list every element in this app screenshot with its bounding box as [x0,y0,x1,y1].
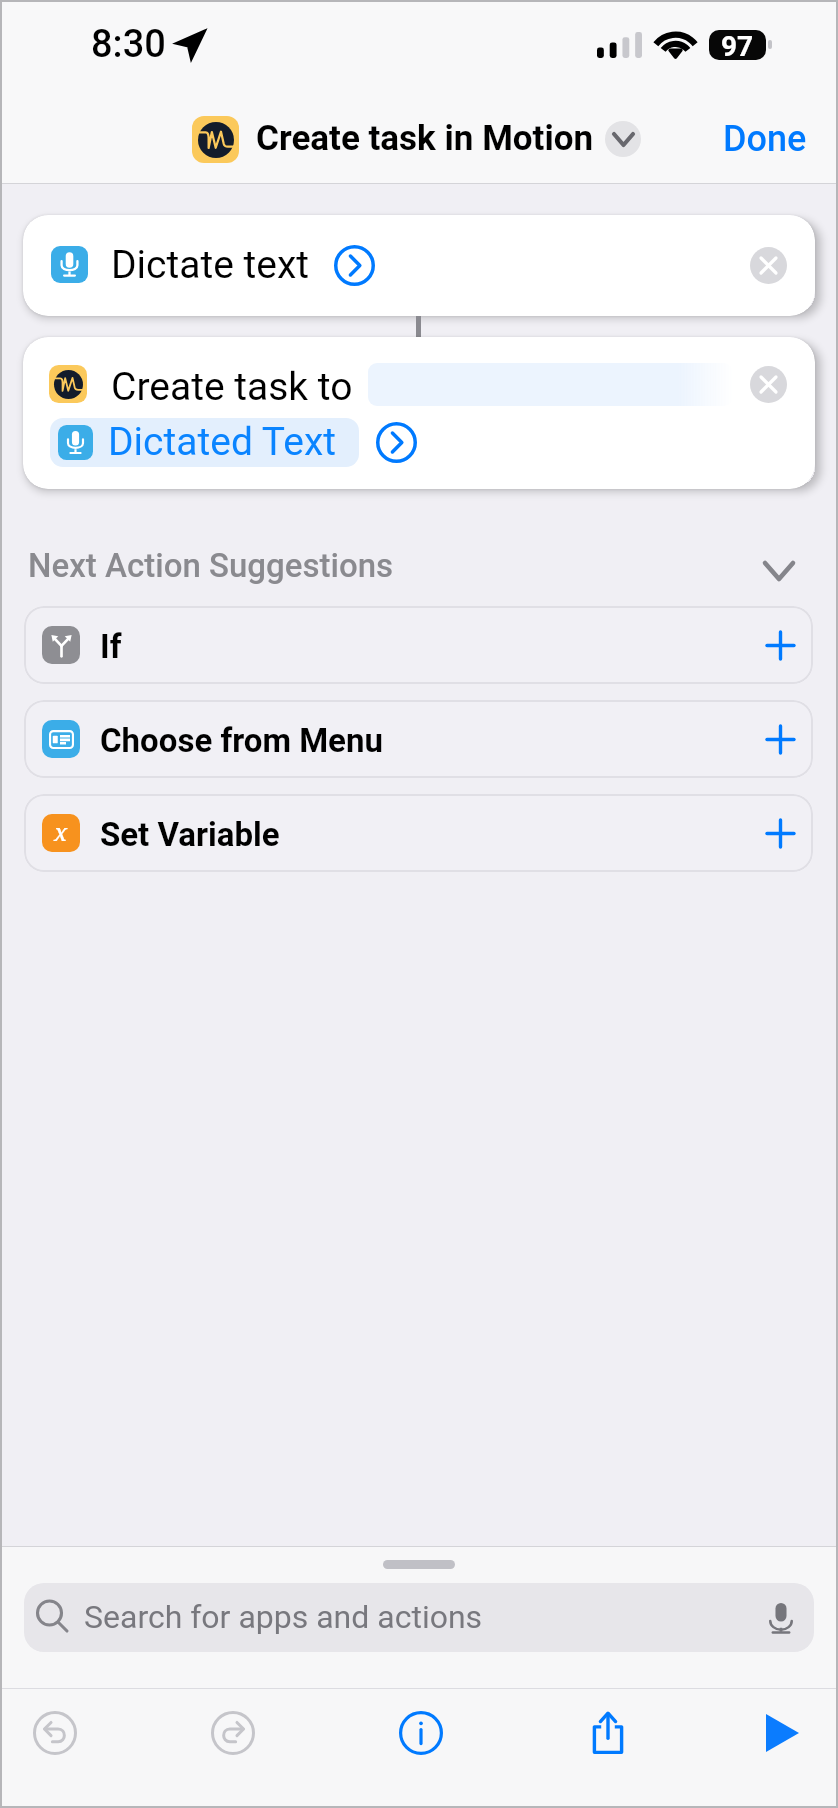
button[interactable]: Details [381,1692,461,1774]
button[interactable]: Voice search [759,1596,803,1640]
button[interactable]: Redo [193,1692,273,1774]
other: Undo [33,1711,77,1755]
other: Redo [211,1711,255,1755]
button[interactable]: Add Choose from Menu [755,714,805,764]
staticText: x [54,816,68,848]
button[interactable]: Run shortcut [742,1692,822,1774]
button[interactable]: Search for apps and actions [24,1583,814,1652]
button[interactable]: Done [704,110,826,168]
other: Share [586,1711,630,1755]
button[interactable] [368,363,733,406]
button[interactable]: Dictated Text [50,418,359,467]
staticText: Choose from Menu [100,721,383,760]
staticText: Dictate text [111,242,310,288]
button[interactable]: Remove action [750,366,787,403]
button[interactable]: Share [568,1692,648,1774]
button[interactable]: Show details [334,245,375,286]
other: Run shortcut [760,1711,804,1755]
staticText: Dictated Text [108,419,336,465]
staticText: Create task in Motion [256,118,594,159]
button[interactable]: Shortcut options [605,121,641,157]
button[interactable]: If [24,606,813,684]
button[interactable]: Show details [376,422,417,463]
button[interactable]: Remove action [750,247,787,284]
staticText: Search for apps and actions [84,1598,483,1636]
staticText: 8:30 [91,22,166,67]
staticText: Done [723,118,807,160]
button[interactable]: Next Action Suggestions [20,536,818,600]
button[interactable]: Choose from Menu [24,700,813,778]
staticText: Create task to [111,364,353,410]
other: Details [399,1711,443,1755]
staticText: Next Action Suggestions [28,546,394,585]
staticText: 97 [721,30,754,60]
button[interactable]: Undo [15,1692,95,1774]
button[interactable]: Create task to [23,337,815,489]
staticText: Set Variable [100,815,280,854]
staticText: If [100,627,122,666]
button[interactable]: Add Set Variable [755,808,805,858]
button[interactable]: Dictate text [23,215,815,316]
button[interactable]: Add If [755,620,805,670]
button[interactable]: x [24,794,813,872]
